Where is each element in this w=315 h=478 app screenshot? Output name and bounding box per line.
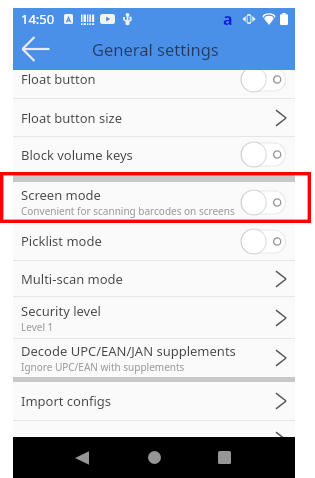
- button[interactable]: Decode UPC/EAN/JAN supplements: [13, 339, 295, 377]
- staticText: Picklist mode: [21, 232, 102, 250]
- button[interactable]: Recents: [204, 437, 244, 478]
- button[interactable]: Home: [134, 437, 174, 478]
- staticText: Screen mode: [21, 186, 101, 204]
- staticText: Ignore UPC/EAN with supplements: [21, 360, 185, 374]
- button[interactable]: Back: [62, 437, 102, 478]
- button[interactable]: Multi-scan mode: [13, 261, 295, 296]
- button[interactable]: Security level: [13, 297, 295, 338]
- staticText: Import configs: [21, 392, 112, 410]
- staticText: Security level: [21, 302, 101, 320]
- button[interactable]: Float button size: [13, 99, 295, 136]
- button[interactable]: Float button: [13, 70, 295, 98]
- staticText: Level 1: [21, 320, 54, 334]
- staticText: General settings: [92, 38, 219, 60]
- staticText: 14:50: [21, 10, 55, 28]
- button[interactable]: Picklist mode: [13, 222, 295, 260]
- staticText: Multi-scan mode: [21, 270, 123, 288]
- staticText: Decode UPC/EAN/JAN supplements: [21, 342, 236, 360]
- staticText: Float button: [21, 70, 96, 88]
- button[interactable]: Import configs: [13, 382, 295, 420]
- staticText: a: [223, 8, 233, 30]
- staticText: Convenient for scanning barcodes on scre…: [21, 204, 235, 218]
- button[interactable]: Back: [16, 29, 56, 69]
- staticText: Float button size: [21, 109, 123, 127]
- button[interactable]: Block volume keys: [13, 137, 295, 172]
- staticText: Block volume keys: [21, 146, 133, 164]
- button[interactable]: [13, 421, 295, 437]
- button[interactable]: Screen mode: [13, 182, 295, 222]
